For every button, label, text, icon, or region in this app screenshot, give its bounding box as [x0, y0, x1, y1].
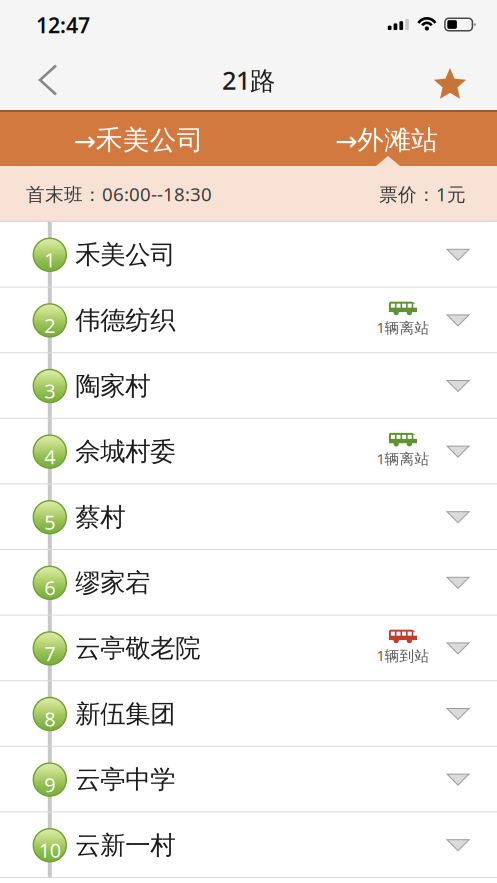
- staticText: 缪家宕: [75, 567, 150, 598]
- staticText: 12:47: [36, 11, 90, 39]
- staticText: →外滩站: [335, 124, 438, 156]
- button[interactable]: 1: [0, 222, 497, 288]
- staticText: 1辆离站: [376, 449, 429, 468]
- staticText: 新伍集团: [75, 698, 175, 729]
- button[interactable]: 8: [0, 681, 497, 747]
- button[interactable]: 5: [0, 484, 497, 550]
- staticText: 云亭中学: [75, 764, 175, 795]
- staticText: 2: [44, 312, 55, 338]
- staticText: 1辆离站: [376, 318, 429, 337]
- button[interactable]: Back: [0, 51, 80, 108]
- staticText: 7: [44, 640, 55, 666]
- staticText: 伟德纺织: [75, 305, 175, 336]
- staticText: 6: [44, 574, 55, 601]
- staticText: 9: [44, 771, 55, 798]
- staticText: →禾美公司: [74, 124, 204, 156]
- button[interactable]: 7: [0, 616, 497, 681]
- staticText: 3: [44, 377, 55, 404]
- staticText: 佘城村委: [75, 436, 175, 467]
- staticText: 票价：1元: [379, 182, 466, 206]
- button[interactable]: 3: [0, 353, 497, 419]
- staticText: 蔡村: [75, 502, 125, 533]
- button[interactable]: 4: [0, 419, 497, 484]
- staticText: 1辆到站: [376, 646, 429, 665]
- staticText: 10: [39, 837, 61, 863]
- staticText: 禾美公司: [75, 239, 175, 270]
- button[interactable]: →禾美公司: [0, 110, 248, 166]
- button[interactable]: Favorite: [409, 50, 497, 110]
- staticText: 4: [44, 443, 55, 470]
- button[interactable]: 6: [0, 550, 497, 616]
- staticText: 陶家村: [75, 370, 150, 401]
- staticText: 云亭敬老院: [75, 633, 200, 664]
- staticText: 云新一村: [75, 830, 175, 861]
- staticText: 1: [44, 246, 55, 273]
- staticText: 21路: [222, 63, 275, 97]
- staticText: 首末班：06:00--18:30: [26, 182, 212, 206]
- staticText: 5: [44, 509, 55, 535]
- button[interactable]: →外滩站: [248, 110, 497, 166]
- button[interactable]: 10: [0, 812, 497, 878]
- staticText: 8: [44, 705, 55, 732]
- button[interactable]: 9: [0, 747, 497, 812]
- button[interactable]: 2: [0, 288, 497, 353]
